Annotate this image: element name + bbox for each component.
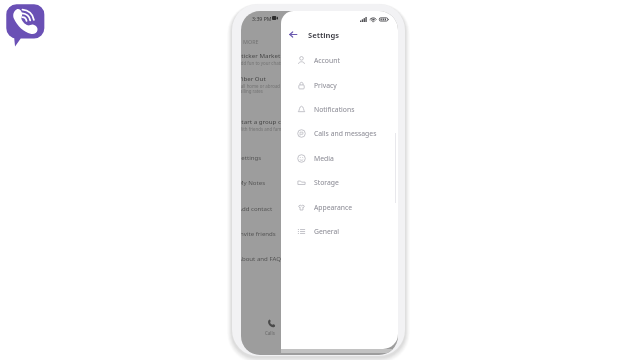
button[interactable]: About and FAQ [241, 248, 395, 267]
staticText: Invite friends [241, 229, 276, 237]
staticText: Notifications [314, 105, 355, 114]
button[interactable]: Viber Out [241, 74, 395, 95]
button[interactable]: Account [281, 49, 398, 71]
staticText: Media [314, 154, 334, 163]
button[interactable]: Calls and messages [281, 122, 398, 144]
button[interactable]: Add contact [241, 198, 395, 217]
staticText: Add fun to your chats [241, 60, 283, 66]
staticText: Calls and messages [314, 129, 377, 138]
staticText: MORE [243, 38, 259, 45]
staticText: 3:39 PM [252, 15, 272, 22]
button[interactable]: My Notes [241, 172, 395, 191]
button[interactable]: Calls [259, 316, 283, 342]
button[interactable]: Media [281, 147, 398, 169]
staticText: About and FAQ [241, 254, 281, 262]
staticText: Start a group chat [241, 117, 291, 125]
staticText: Account [314, 56, 340, 65]
button[interactable]: General [281, 220, 398, 242]
button[interactable]: Notifications [281, 98, 398, 120]
staticText: Settings [308, 30, 340, 40]
staticText: General [314, 227, 340, 236]
button[interactable]: Start a group chat [241, 117, 395, 132]
staticText: Appearance [314, 203, 353, 212]
staticText: Settings [241, 153, 262, 161]
staticText: Add contact [241, 204, 273, 212]
staticText: Storage [314, 178, 339, 187]
button[interactable]: Storage [281, 171, 398, 193]
staticText: Sticker Market [241, 51, 281, 59]
button[interactable]: Settings [241, 147, 395, 166]
staticText: Viber Out [241, 74, 266, 82]
button[interactable]: Appearance [281, 196, 398, 218]
staticText: My Notes [241, 178, 266, 186]
staticText: Calls [265, 330, 275, 336]
staticText: Call home or abroad at low calling rates [241, 83, 294, 95]
button[interactable]: Privacy [281, 74, 398, 96]
button[interactable]: Sticker Market [241, 51, 395, 66]
staticText: Privacy [314, 81, 337, 90]
button[interactable]: Invite friends [241, 223, 395, 242]
button[interactable]: Back [285, 27, 300, 42]
staticText: With friends and family [241, 126, 286, 132]
